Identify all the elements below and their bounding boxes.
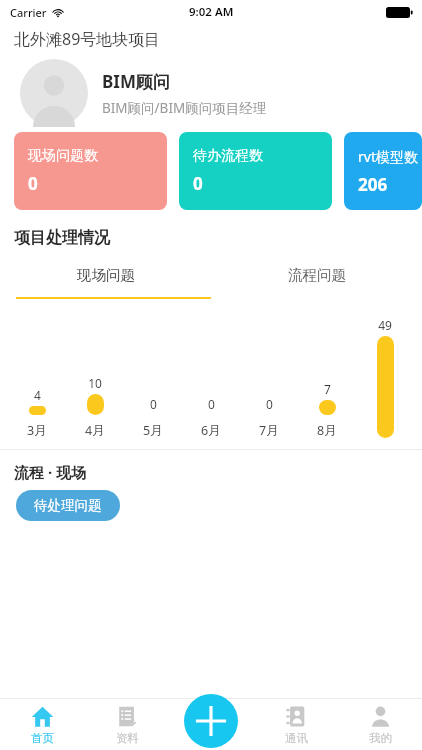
staticText: 北外滩89号地块项目	[14, 28, 161, 50]
staticText: 9:02 AM	[189, 4, 234, 20]
staticText: 现场问题数	[28, 147, 98, 165]
staticText: 待办流程数	[193, 147, 263, 165]
staticText: 10	[88, 375, 102, 391]
staticText: 资料	[116, 731, 139, 745]
staticText: 待处理问题	[34, 497, 102, 514]
staticText: 通讯	[285, 731, 308, 745]
staticText: 7	[324, 381, 331, 397]
staticText: 流程 · 现场	[14, 462, 87, 482]
staticText: 我的	[369, 731, 392, 745]
staticText: 0	[266, 396, 273, 412]
staticText: 3月	[27, 422, 47, 439]
staticText: 0	[208, 396, 215, 412]
button[interactable]: 待处理问题	[16, 490, 120, 521]
staticText: 0	[28, 172, 38, 195]
button[interactable]: 现场问题	[0, 262, 211, 288]
staticText: 49	[378, 317, 392, 333]
staticText: 项目处理情况	[14, 228, 110, 248]
staticText: Carrier	[10, 5, 47, 20]
staticText: 流程问题	[288, 266, 346, 284]
staticText: rvt模型数量	[358, 147, 422, 166]
button[interactable]: 待办流程数	[179, 132, 332, 210]
button[interactable]: 流程问题	[211, 262, 422, 288]
button[interactable]: Add	[184, 694, 238, 748]
button[interactable]: 通讯	[254, 698, 338, 750]
button[interactable]: BIM顾问	[0, 54, 422, 132]
staticText: 6月	[201, 422, 221, 439]
staticText: 206	[358, 173, 388, 196]
staticText: 首页	[31, 731, 54, 745]
staticText: 5月	[143, 422, 163, 439]
button[interactable]: 我的	[338, 698, 422, 750]
staticText: 0	[150, 396, 157, 412]
button[interactable]: rvt模型数量	[344, 132, 422, 210]
button[interactable]: 首页	[0, 698, 85, 750]
staticText: 0	[193, 172, 203, 195]
staticText: BIM顾问/BIM顾问项目经理	[102, 99, 267, 117]
button[interactable]: 现场问题数	[14, 132, 167, 210]
staticText: 7月	[259, 422, 279, 439]
staticText: 现场问题	[77, 266, 135, 284]
button[interactable]: 资料	[85, 698, 170, 750]
staticText: 4	[34, 387, 41, 403]
staticText: BIM顾问	[102, 70, 170, 93]
staticText: 4月	[85, 422, 105, 439]
staticText: 8月	[317, 422, 337, 439]
